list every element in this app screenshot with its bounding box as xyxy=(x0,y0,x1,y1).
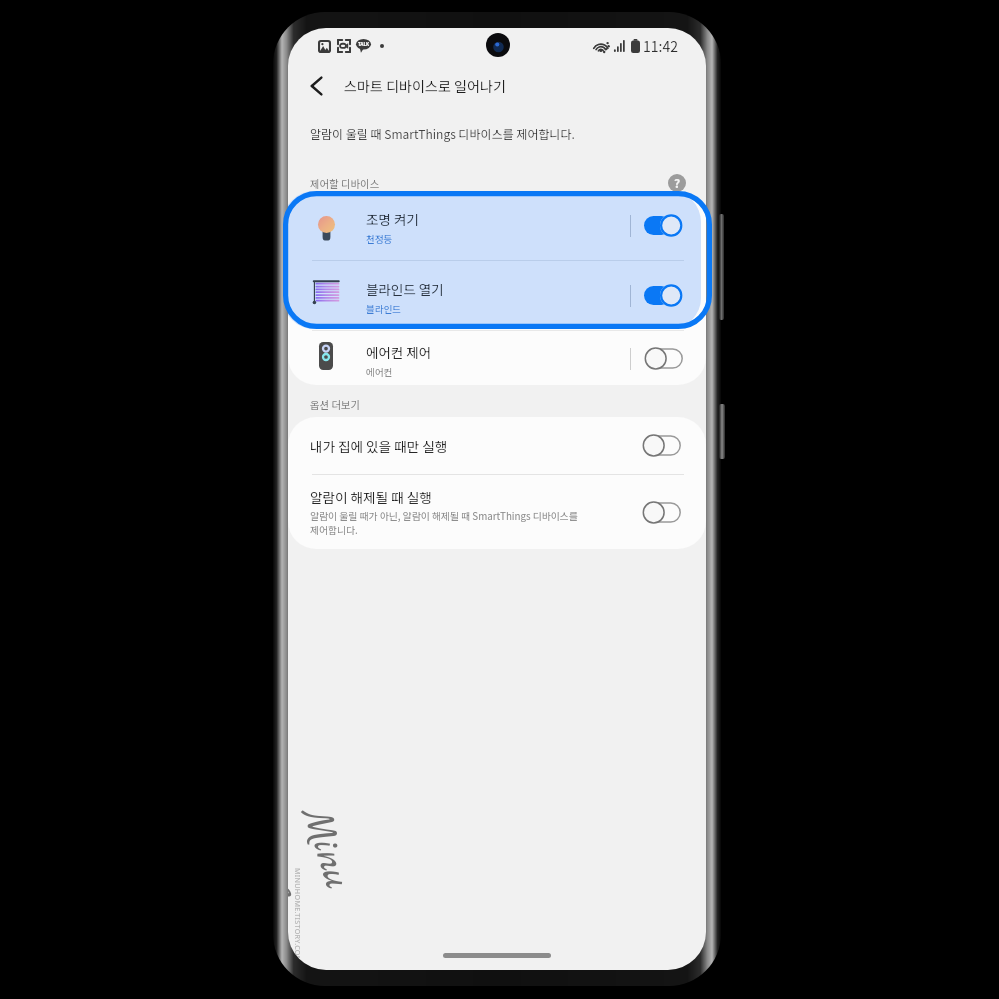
button[interactable]: 조명 켜기 xyxy=(288,191,706,260)
staticText: 알람이 울릴 때가 아닌, 알람이 해제될 때 SmartThings 디바이스… xyxy=(310,509,582,537)
button[interactable]: 알람이 해제될 때 실행 xyxy=(288,475,706,549)
staticText: MINUHOME.TISTORY.COM xyxy=(293,868,303,963)
staticText: 블라인드 열기 xyxy=(366,279,444,299)
staticText: 에어컨 제어 xyxy=(366,342,432,362)
button[interactable]: 블라인드 열기 xyxy=(288,261,706,330)
button[interactable]: Turn off xyxy=(630,284,683,307)
staticText: 블라인드 열기 xyxy=(366,279,444,299)
button[interactable]: Turn on xyxy=(630,347,683,370)
staticText: 내가 집에 있을 때만 실행 xyxy=(310,436,642,456)
staticText: ? xyxy=(674,174,681,191)
staticText: 알람이 울릴 때 SmartThings 디바이스를 제어합니다. xyxy=(310,125,575,142)
button[interactable]: Turn off xyxy=(630,284,683,307)
staticText: 조명 켜기 xyxy=(366,209,419,229)
staticText: 블라인드 xyxy=(366,302,401,316)
staticText: 제어할 디바이스 xyxy=(310,176,380,191)
button[interactable]: Turn on xyxy=(642,434,681,457)
button[interactable]: 조명 켜기 xyxy=(288,191,706,260)
staticText: 천정등 xyxy=(366,232,393,246)
staticText: 에어컨 xyxy=(366,365,393,379)
staticText: 알람이 해제될 때 실행 xyxy=(310,487,432,507)
staticText: TALK xyxy=(358,41,370,47)
staticText: 스마트 디바이스로 일어나기 xyxy=(344,76,506,96)
staticText: 천정등 xyxy=(366,232,393,246)
button[interactable]: 내가 집에 있을 때만 실행 xyxy=(288,417,706,474)
button[interactable]: 블라인드 열기 xyxy=(288,261,706,329)
button[interactable]: Turn off xyxy=(630,214,683,237)
button[interactable]: 에어컨 제어 xyxy=(288,331,706,386)
staticText: 조명 켜기 xyxy=(366,209,419,229)
button[interactable]: Back xyxy=(297,66,337,106)
button[interactable]: Help xyxy=(666,173,688,193)
button[interactable]: Turn off xyxy=(630,214,683,237)
staticText: 옵션 더보기 xyxy=(310,397,361,412)
staticText: 11:42 xyxy=(643,36,678,56)
staticText: 블라인드 xyxy=(366,302,401,316)
staticText: Minu home xyxy=(288,800,373,945)
button[interactable]: Turn on xyxy=(642,501,681,524)
